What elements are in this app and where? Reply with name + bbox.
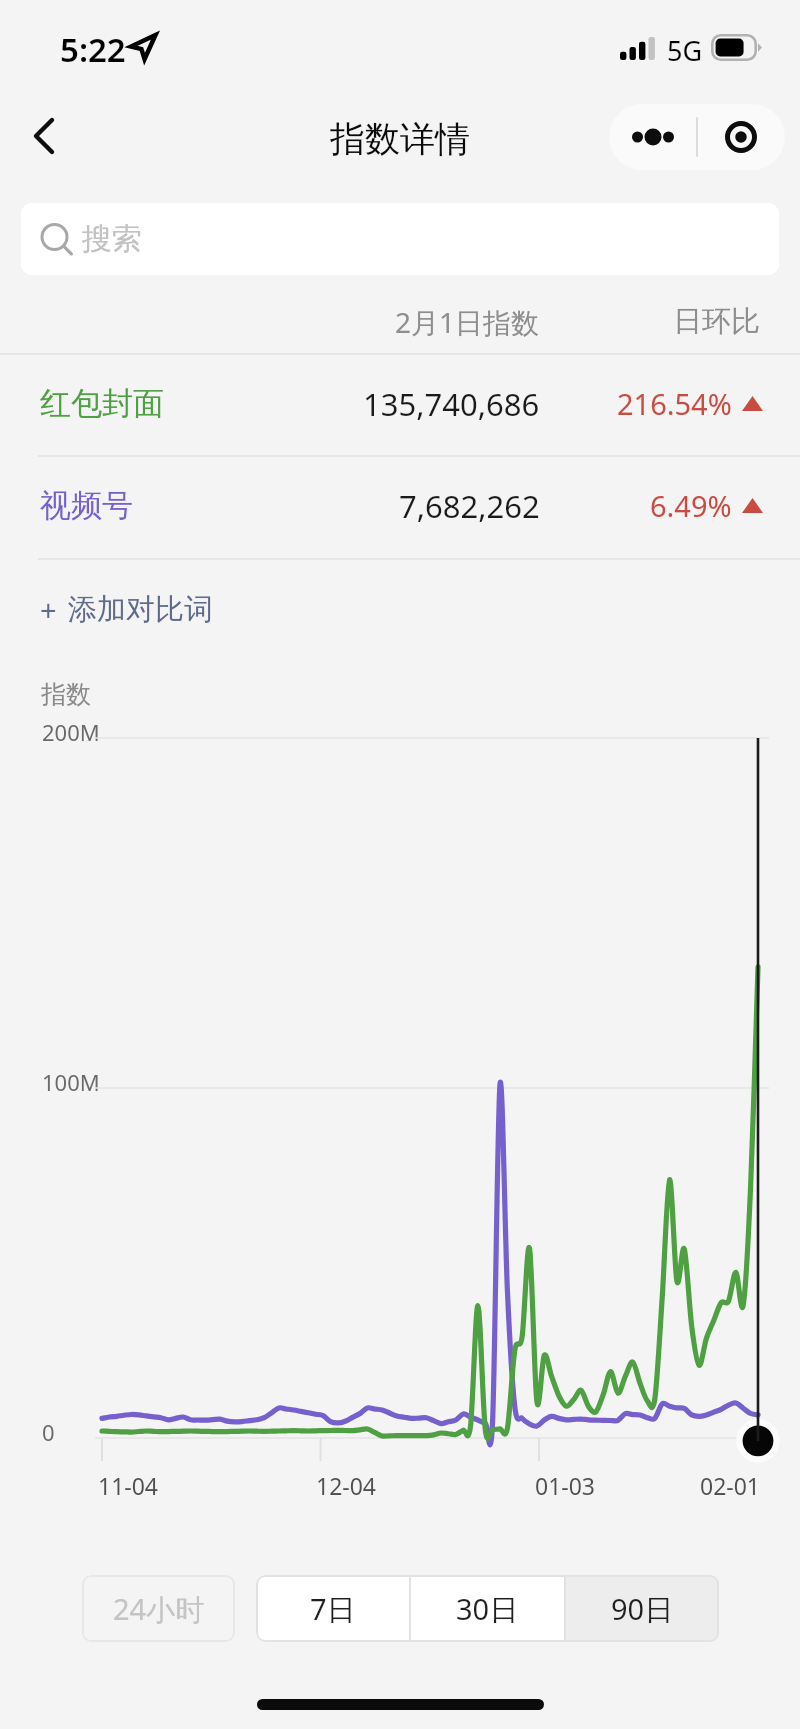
staticText: 02-01 — [700, 1470, 761, 1501]
staticText: 0 — [42, 1417, 55, 1447]
button[interactable]: 红包封面 — [0, 353, 800, 454]
staticText: 指数详情 — [0, 117, 800, 161]
button[interactable]: Back — [8, 101, 80, 171]
staticText: 5G — [667, 32, 703, 69]
staticText: 30日 — [456, 1589, 519, 1629]
button[interactable]: More options — [609, 104, 697, 170]
staticText: 红包封面 — [40, 384, 164, 423]
button[interactable]: 视频号 — [0, 455, 800, 556]
staticText: 搜索 — [82, 220, 142, 258]
staticText: 添加对比词 — [68, 591, 213, 628]
button[interactable]: 搜索 — [21, 203, 779, 275]
staticText: 24小时 — [113, 1589, 205, 1629]
staticText: 6.49% — [650, 486, 732, 525]
button[interactable]: 7日 — [256, 1575, 409, 1642]
staticText: 指数 — [41, 679, 91, 710]
staticText: 100M — [42, 1067, 100, 1097]
staticText: 200M — [42, 717, 100, 747]
staticText: 7,682,262 — [399, 485, 540, 527]
staticText: 7日 — [310, 1589, 356, 1629]
staticText: 5:22 — [60, 27, 126, 72]
button[interactable]: Close mini program — [697, 104, 785, 170]
staticText: + — [40, 590, 57, 629]
staticText: 90日 — [611, 1589, 674, 1629]
staticText: 01-03 — [535, 1470, 596, 1501]
staticText: 11-04 — [98, 1470, 159, 1501]
staticText: 日环比 — [673, 303, 760, 340]
button[interactable]: + — [40, 579, 213, 639]
staticText: 2月1日指数 — [395, 303, 540, 341]
button[interactable]: 30日 — [411, 1575, 564, 1642]
button[interactable]: 24小时 — [82, 1575, 235, 1642]
staticText: 135,740,686 — [363, 383, 540, 425]
staticText: 12-04 — [316, 1470, 377, 1501]
button[interactable]: 90日 — [566, 1575, 719, 1642]
staticText: 视频号 — [40, 486, 133, 525]
staticText: 216.54% — [617, 384, 732, 423]
